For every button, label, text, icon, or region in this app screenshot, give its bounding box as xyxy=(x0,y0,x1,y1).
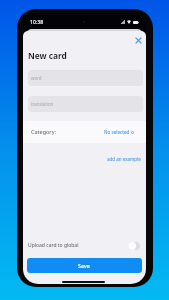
staticText: add an example xyxy=(107,156,141,162)
staticText: Save xyxy=(78,262,90,269)
button[interactable]: Close xyxy=(130,32,146,48)
button[interactable]: Category: xyxy=(23,121,146,143)
staticText: 10:38 xyxy=(30,19,44,26)
button[interactable]: add an example xyxy=(107,156,141,162)
button[interactable]: translation xyxy=(28,96,143,112)
staticText: New card xyxy=(28,50,67,61)
button[interactable]: Upload card to global xyxy=(128,242,140,250)
button[interactable]: Save xyxy=(27,258,142,273)
button[interactable]: word xyxy=(28,70,143,86)
staticText: Category: xyxy=(31,128,56,135)
staticText: word xyxy=(31,75,42,81)
staticText: Upload card to global xyxy=(28,242,79,249)
staticText: No selected xyxy=(104,129,130,135)
staticText: translation xyxy=(31,101,54,107)
